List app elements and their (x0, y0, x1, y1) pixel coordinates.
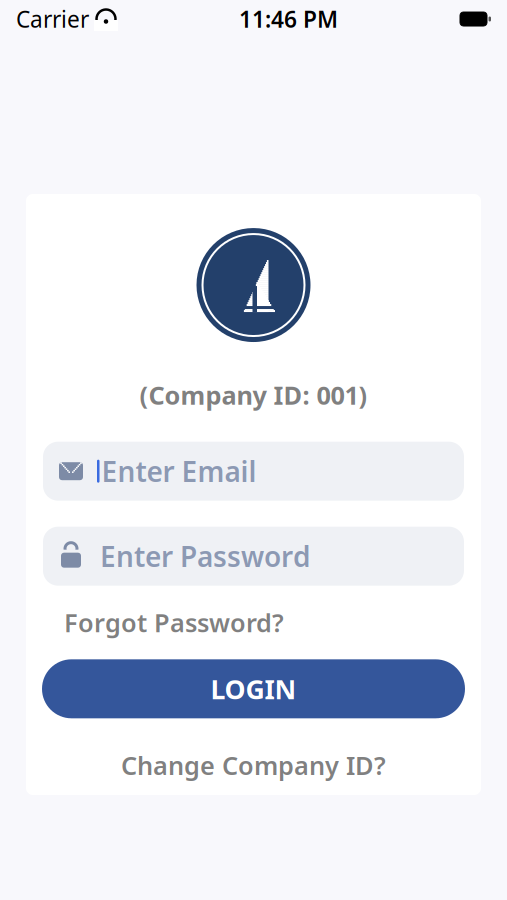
staticText: Change Company ID? (121, 748, 386, 782)
staticText: Forgot Password? (64, 606, 284, 639)
staticText: Carrier (16, 4, 89, 34)
staticText: Enter Password (100, 538, 311, 575)
button[interactable]: Forgot Password? (64, 600, 284, 645)
staticText: (Company ID: 001) (139, 378, 367, 412)
button[interactable]: LOGIN (42, 659, 465, 718)
staticText: Enter Email (101, 453, 256, 490)
button[interactable]: Change Company ID? (26, 740, 481, 790)
staticText: 11:46 PM (239, 4, 338, 34)
staticText: LOGIN (210, 671, 296, 706)
